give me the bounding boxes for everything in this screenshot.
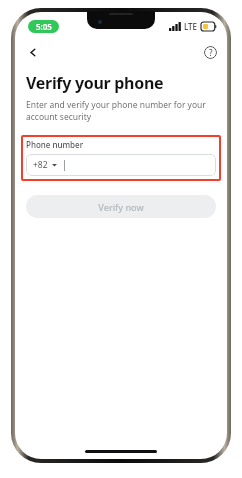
- staticText: Enter and verify your phone number for y…: [26, 99, 212, 123]
- button[interactable]: Help: [198, 40, 222, 64]
- staticText: LTE: [184, 21, 198, 32]
- staticText: +82: [33, 159, 48, 171]
- staticText: 5:05: [36, 21, 52, 32]
- staticText: Phone number: [26, 139, 84, 150]
- staticText: Verify now: [98, 201, 144, 213]
- button[interactable]: Back: [21, 40, 45, 64]
- button[interactable]: +82: [26, 154, 216, 176]
- staticText: ?: [209, 47, 213, 58]
- staticText: Verify your phone: [26, 72, 164, 94]
- button[interactable]: Verify now: [26, 195, 216, 218]
